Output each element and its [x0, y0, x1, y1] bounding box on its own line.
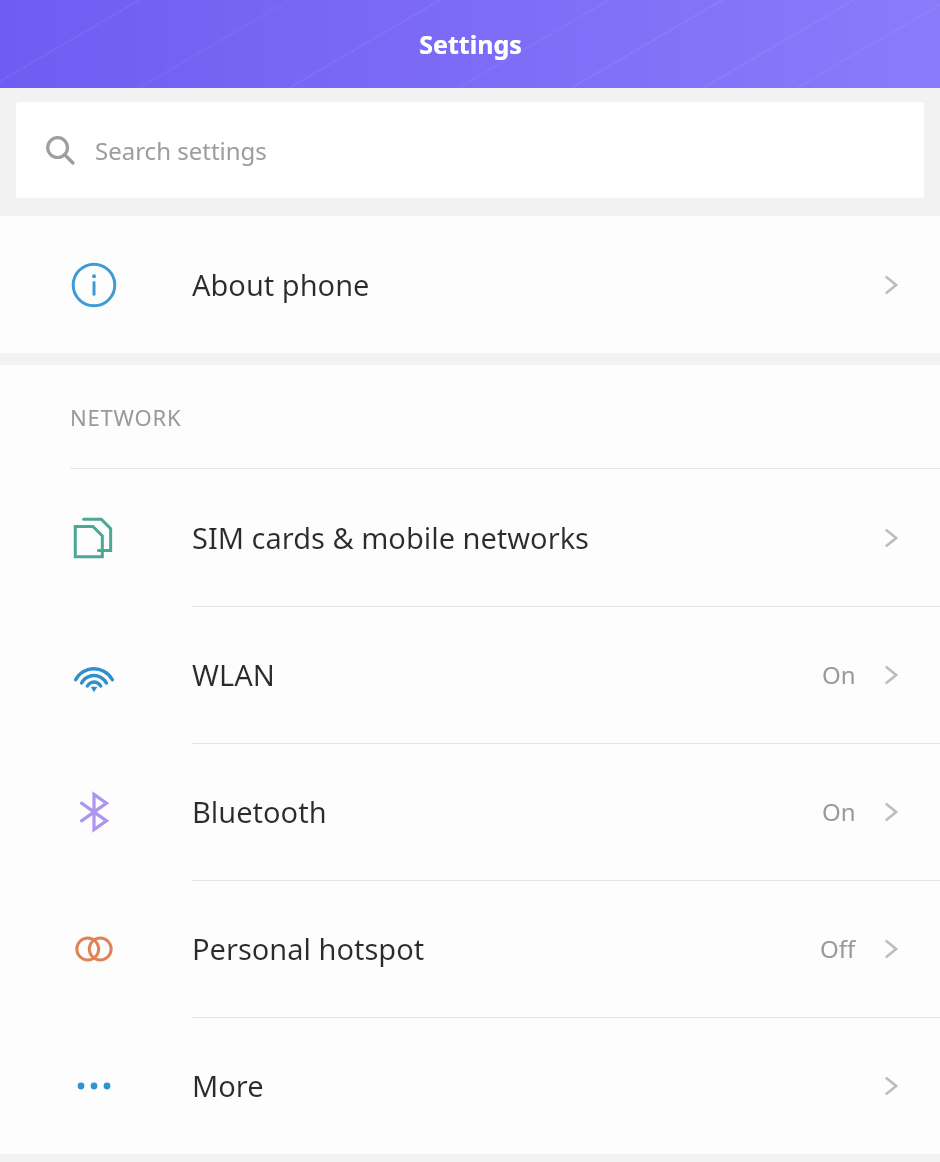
staticText: Off — [820, 932, 856, 965]
button[interactable]: Search — [16, 102, 924, 198]
staticText: On — [822, 658, 856, 691]
staticText: WLAN — [192, 655, 822, 694]
button[interactable]: Personal hotspot — [0, 880, 940, 1017]
other: WLAN — [68, 649, 120, 701]
staticText: Search settings — [95, 134, 267, 167]
button[interactable]: SIM cards — [0, 469, 940, 606]
other: Bluetooth — [68, 786, 120, 838]
staticText: More — [192, 1066, 878, 1105]
staticText: Settings — [419, 27, 522, 61]
button[interactable]: Info — [0, 216, 940, 353]
other: Personal hotspot — [68, 923, 120, 975]
other: Info — [68, 259, 120, 311]
staticText: On — [822, 795, 856, 828]
button[interactable]: More — [0, 1017, 940, 1154]
staticText: Personal hotspot — [192, 929, 820, 968]
other: Search — [45, 135, 75, 165]
button[interactable]: WLAN — [0, 606, 940, 743]
other: SIM cards — [68, 512, 120, 564]
staticText: SIM cards & mobile networks — [192, 518, 878, 557]
staticText: NETWORK — [70, 402, 182, 432]
staticText: About phone — [192, 265, 878, 304]
other: More — [68, 1060, 120, 1112]
button[interactable]: Bluetooth — [0, 743, 940, 880]
staticText: Bluetooth — [192, 792, 822, 831]
